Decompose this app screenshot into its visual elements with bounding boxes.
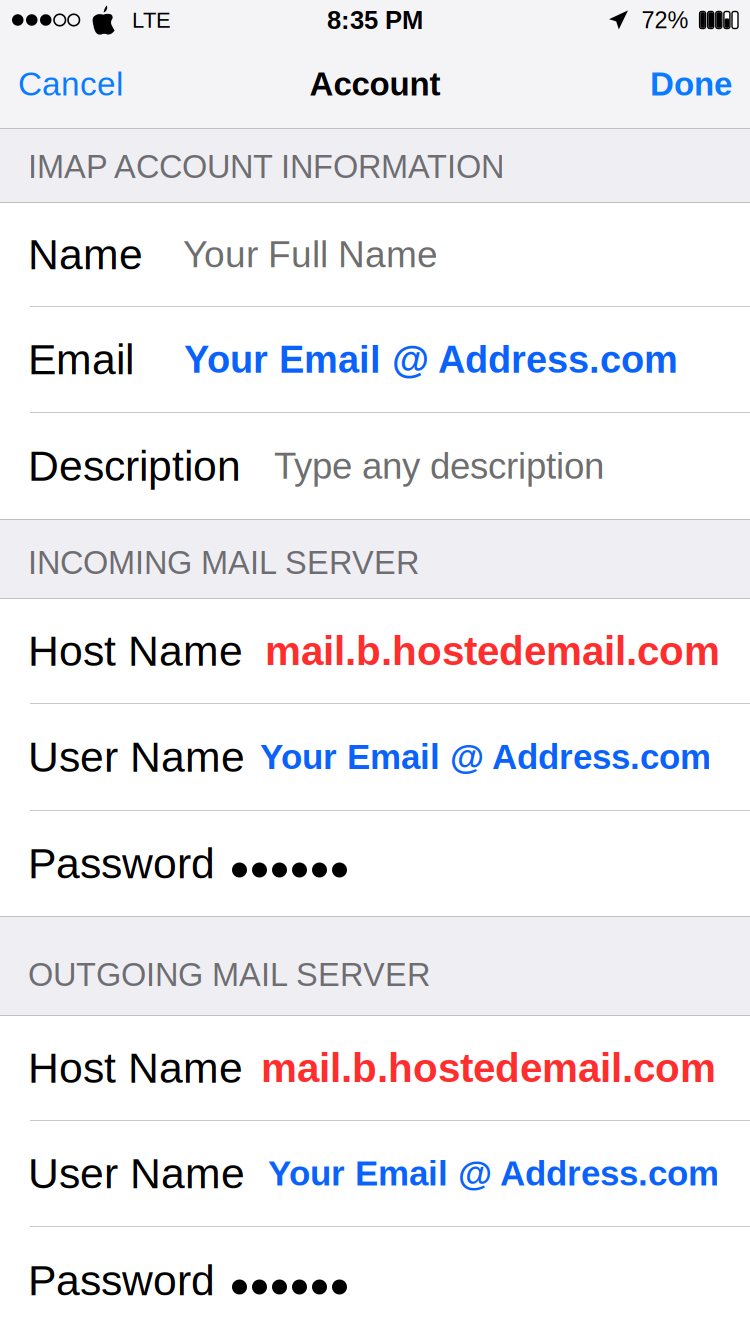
- button[interactable]: Cancel: [8, 51, 133, 117]
- staticText: mail.b.hostedemail.com: [265, 628, 720, 673]
- staticText: LTE: [132, 8, 171, 32]
- button[interactable]: Done: [640, 51, 742, 116]
- button[interactable]: Description: [0, 413, 750, 519]
- staticText: OUTGOING MAIL SERVER: [28, 957, 430, 993]
- button[interactable]: Host Name: [0, 599, 750, 704]
- staticText: 8:35 PM: [327, 6, 423, 34]
- staticText: mail.b.hostedemail.com: [261, 1045, 716, 1090]
- button[interactable]: User Name: [0, 1121, 750, 1227]
- staticText: Password: [28, 1257, 215, 1304]
- staticText: User Name: [28, 1150, 245, 1197]
- staticText: Password: [28, 840, 215, 887]
- button[interactable]: Password: [0, 811, 750, 916]
- staticText: Done: [650, 65, 732, 102]
- staticText: Your Email @ Address.com: [268, 1154, 719, 1193]
- staticText: Description: [28, 442, 241, 490]
- staticText: Your Email @ Address.com: [260, 737, 711, 776]
- button[interactable]: Password: [0, 1227, 750, 1334]
- staticText: IMAP ACCOUNT INFORMATION: [28, 149, 504, 185]
- button[interactable]: User Name: [0, 704, 750, 811]
- staticText: Your Full Name: [183, 234, 438, 275]
- staticText: Your Email @ Address.com: [184, 338, 678, 381]
- staticText: Cancel: [18, 65, 123, 103]
- staticText: Name: [28, 231, 143, 278]
- staticText: Host Name: [28, 627, 243, 675]
- staticText: 72%: [642, 7, 689, 33]
- staticText: Account: [309, 65, 440, 102]
- staticText: Host Name: [28, 1044, 243, 1092]
- button[interactable]: Name: [0, 203, 750, 307]
- staticText: User Name: [28, 733, 245, 781]
- staticText: INCOMING MAIL SERVER: [28, 545, 419, 581]
- button[interactable]: Email: [0, 307, 750, 413]
- button[interactable]: Host Name: [0, 1016, 750, 1121]
- staticText: Email: [28, 336, 134, 383]
- staticText: Type any description: [274, 445, 604, 486]
